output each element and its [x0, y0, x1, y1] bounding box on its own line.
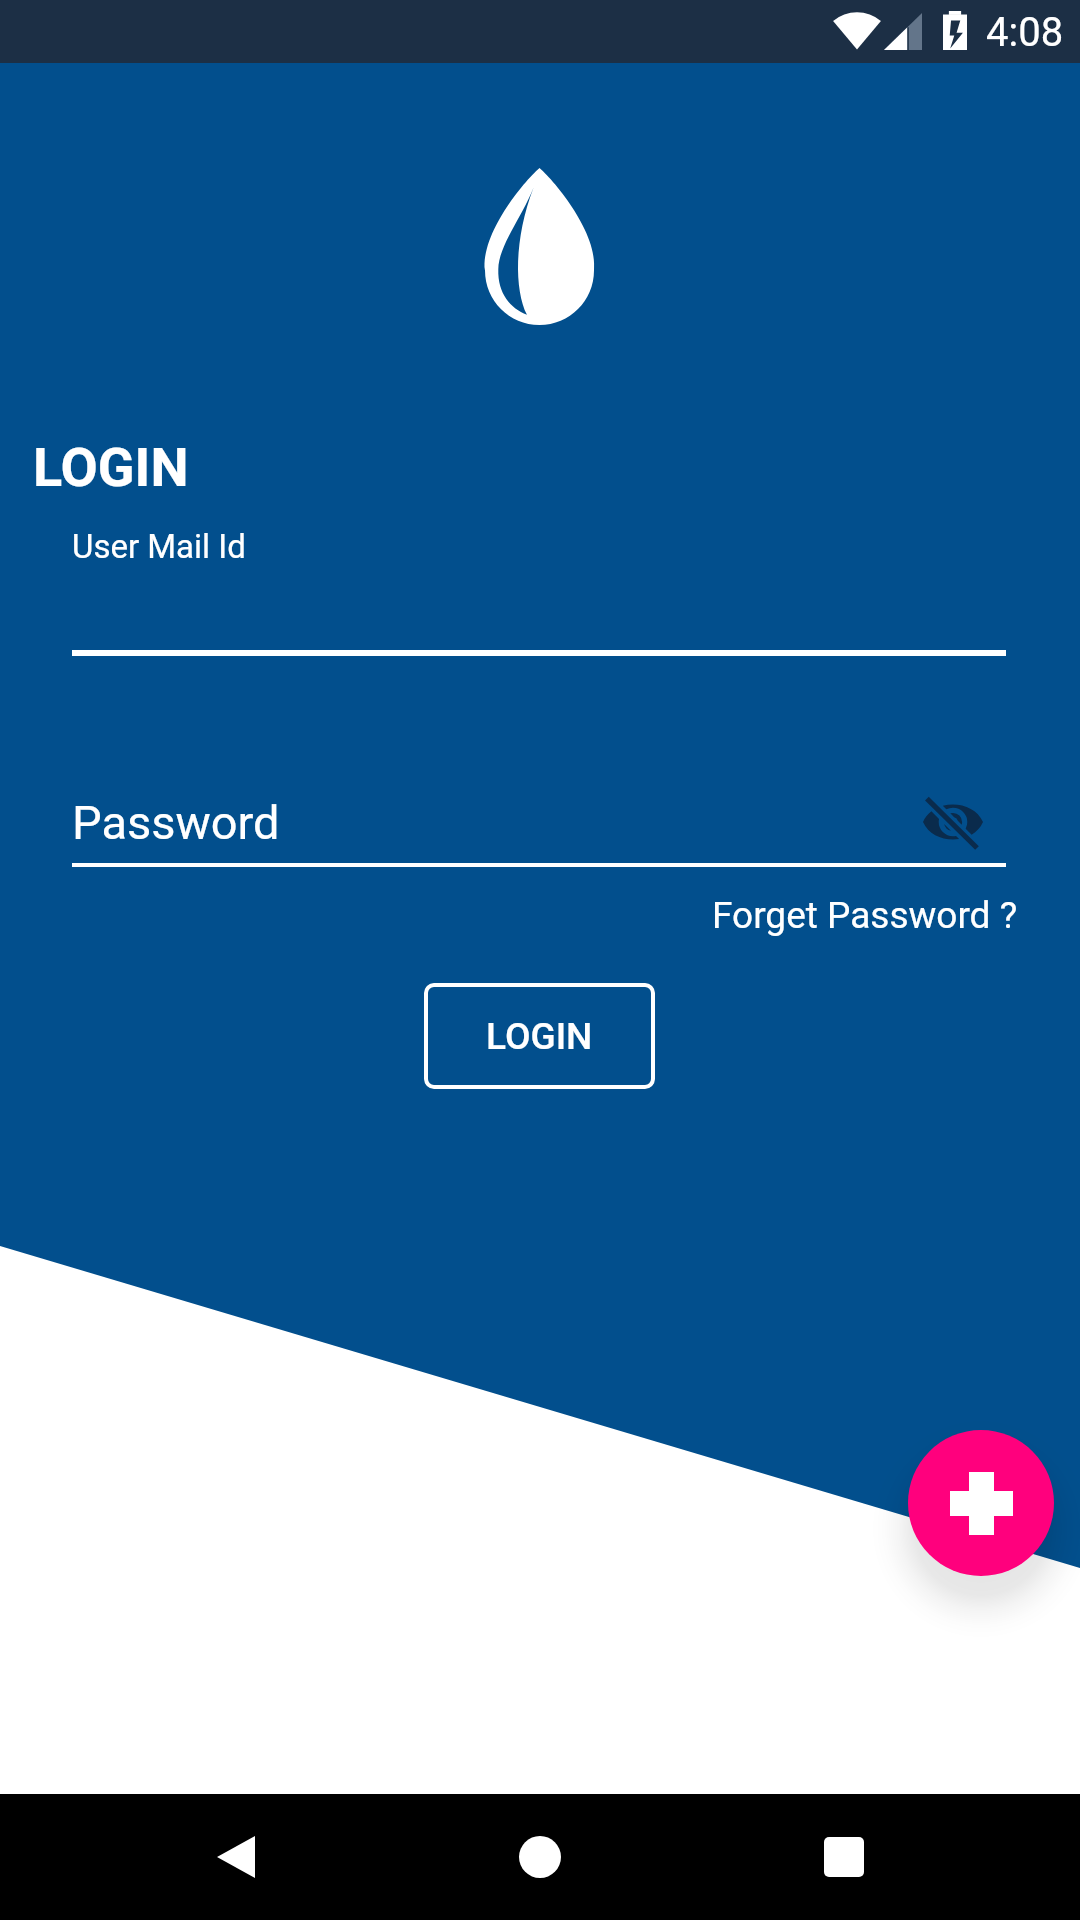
- staticText: Forget Password ?: [712, 894, 1018, 937]
- staticText: Password: [72, 795, 280, 850]
- button[interactable]: Show password: [908, 777, 998, 867]
- button[interactable]: Recent apps: [784, 1794, 904, 1920]
- button[interactable]: LOGIN: [424, 983, 655, 1089]
- staticText: User Mail Id: [72, 527, 246, 566]
- button[interactable]: Add: [908, 1430, 1054, 1576]
- staticText: LOGIN: [33, 436, 189, 499]
- button[interactable]: Back: [176, 1794, 296, 1920]
- button[interactable]: Home: [480, 1794, 600, 1920]
- staticText: 4:08: [986, 9, 1064, 56]
- staticText: LOGIN: [486, 1015, 593, 1058]
- button[interactable]: Forget Password ?: [696, 886, 1034, 945]
